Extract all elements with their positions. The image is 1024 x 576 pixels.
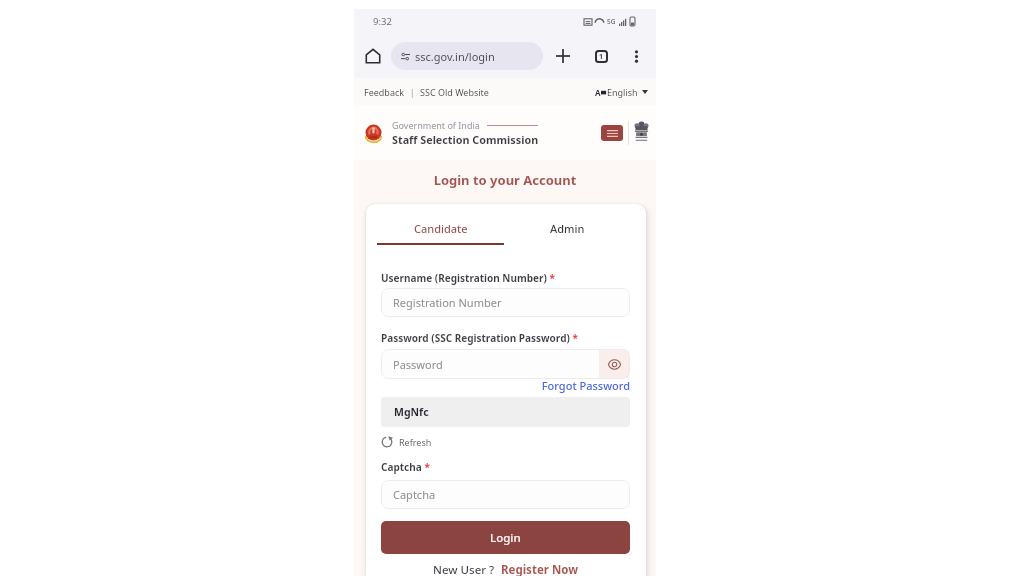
staticText: Captcha <box>393 487 436 502</box>
staticText: 9:32 <box>373 15 392 28</box>
staticText: Candidate <box>414 221 468 236</box>
staticText: MgNfc <box>394 405 429 419</box>
button[interactable]: Home <box>360 43 386 69</box>
staticText: * <box>422 460 431 474</box>
button[interactable]: Show password <box>599 349 630 379</box>
staticText: English <box>607 86 638 98</box>
button[interactable]: Forgot Password <box>381 378 630 393</box>
button[interactable]: Captcha <box>381 480 630 509</box>
staticText: A <box>595 87 601 98</box>
staticText: ssc.gov.in/login <box>415 49 495 64</box>
button[interactable]: Menu <box>601 125 623 141</box>
button[interactable]: Registration Number <box>381 288 630 317</box>
button[interactable]: Password <box>381 349 599 379</box>
button[interactable]: Candidate <box>377 214 504 242</box>
staticText: Login to your Account <box>354 171 656 189</box>
button[interactable]: New tab <box>551 44 575 68</box>
button[interactable]: Admin <box>504 214 631 242</box>
staticText: Captcha <box>381 460 422 474</box>
button[interactable]: More options <box>626 44 647 68</box>
button[interactable]: Login <box>381 521 630 554</box>
staticText: * <box>570 331 579 345</box>
staticText: Password <box>393 357 443 372</box>
staticText: * <box>547 271 556 285</box>
button[interactable]: Tabs <box>589 44 613 68</box>
staticText: Refresh <box>399 436 432 448</box>
staticText: | <box>405 86 420 98</box>
button[interactable]: ssc.gov.in/login <box>391 42 543 70</box>
button[interactable]: A <box>595 86 648 98</box>
button[interactable]: Feedback <box>364 86 405 98</box>
staticText: Username (Registration Number) <box>381 271 547 285</box>
staticText: New User ? <box>433 562 495 576</box>
button[interactable]: Register Now <box>501 562 579 576</box>
button[interactable]: Refresh <box>381 436 432 448</box>
staticText: Admin <box>550 221 585 236</box>
staticText: Staff Selection Commission <box>392 132 539 147</box>
staticText: 1 <box>599 52 604 62</box>
staticText: Login <box>490 530 521 546</box>
staticText: Password (SSC Registration Password) <box>381 331 570 345</box>
staticText: Government of India <box>392 119 480 131</box>
staticText: 5G <box>607 17 616 26</box>
button[interactable]: SSC Old Website <box>420 86 489 98</box>
staticText: Registration Number <box>393 295 502 310</box>
